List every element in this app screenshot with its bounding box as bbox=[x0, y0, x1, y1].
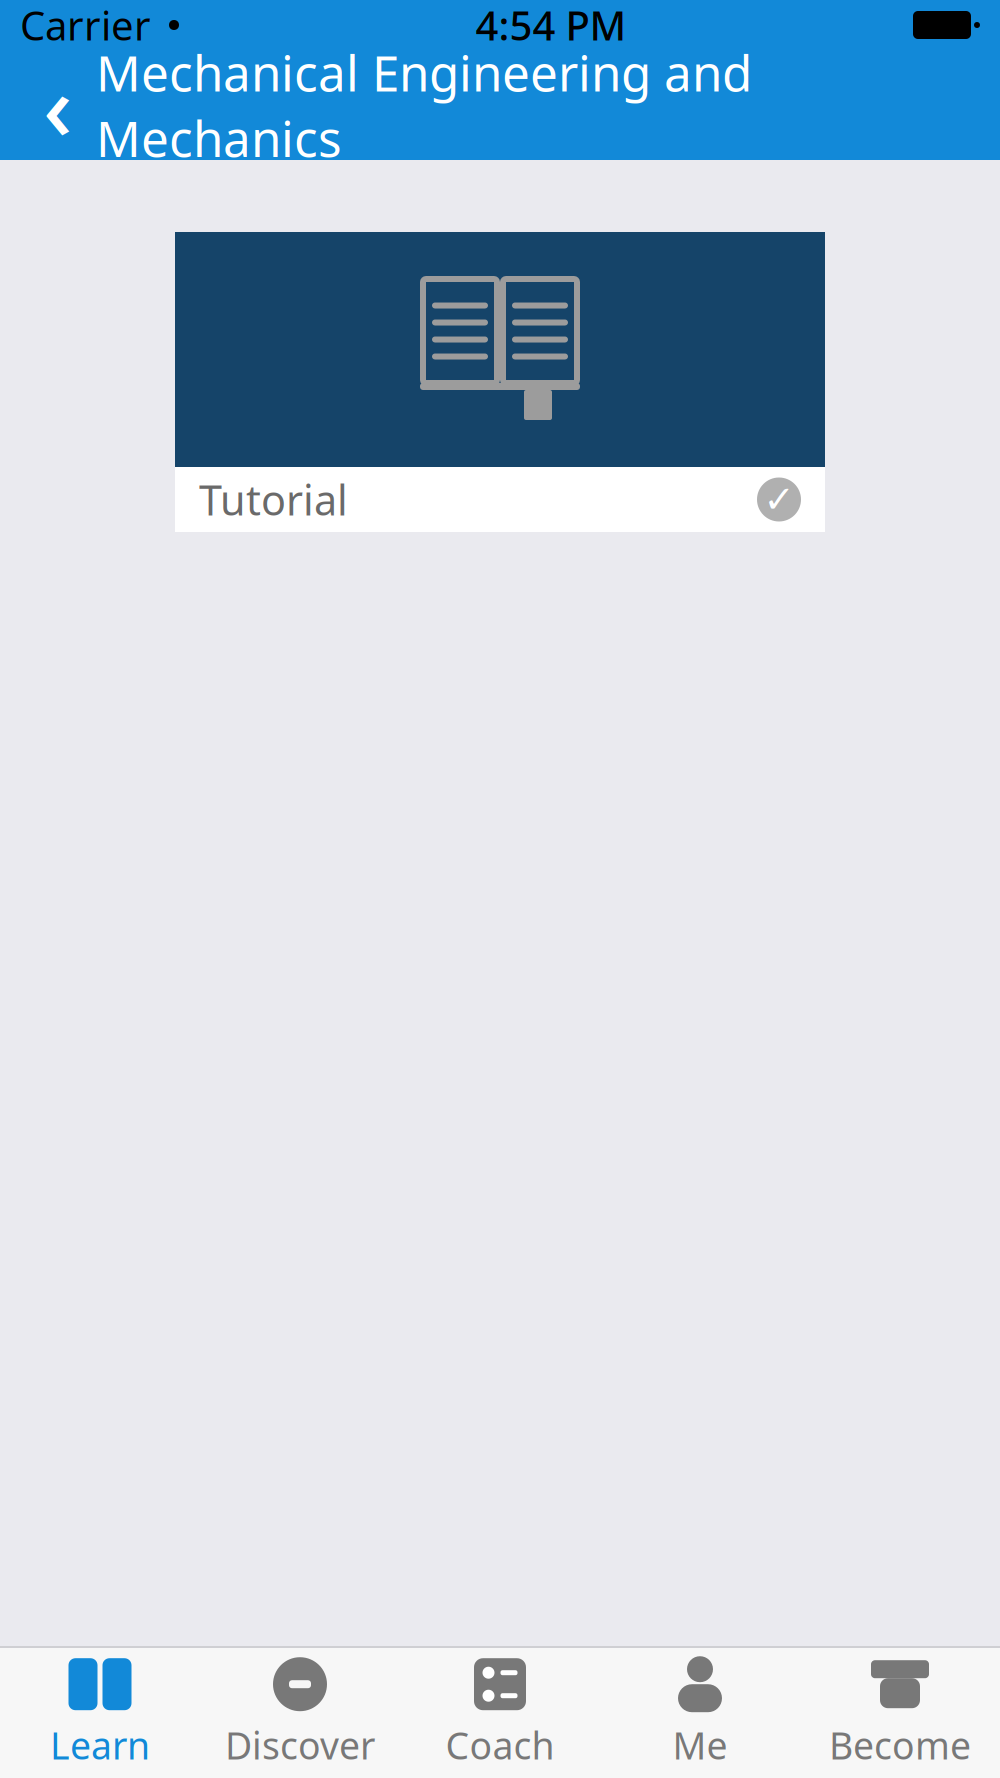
staticText: Learn bbox=[50, 1720, 150, 1770]
staticText: Carrier bbox=[20, 0, 151, 51]
staticText: 4:54 PM bbox=[475, 0, 626, 51]
staticText: Mechanical Engineering and Mechanics bbox=[96, 39, 752, 170]
staticText: ✓ bbox=[763, 478, 794, 521]
staticText: Me bbox=[672, 1720, 727, 1770]
staticText: Discover bbox=[225, 1720, 375, 1770]
button[interactable]: Tutorial bbox=[175, 232, 825, 532]
staticText: Coach bbox=[445, 1720, 554, 1770]
button[interactable]: Learn bbox=[0, 1648, 200, 1778]
button[interactable]: Back bbox=[0, 50, 88, 160]
button[interactable]: Me bbox=[600, 1648, 800, 1778]
button[interactable]: Discover bbox=[200, 1648, 400, 1778]
staticText: Tutorial bbox=[199, 472, 348, 527]
button[interactable]: Become bbox=[800, 1648, 1000, 1778]
button[interactable]: Coach bbox=[400, 1648, 600, 1778]
staticText: ‹ bbox=[43, 45, 73, 165]
staticText: Become bbox=[829, 1720, 971, 1770]
